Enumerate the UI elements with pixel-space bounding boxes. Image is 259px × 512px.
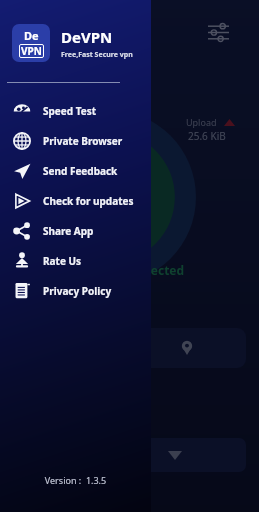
staticText: Upload xyxy=(186,116,217,128)
staticText: DeVPN xyxy=(61,27,113,47)
staticText: Send Feedback xyxy=(43,164,118,178)
button[interactable]: DeVPN logo xyxy=(12,24,50,62)
button[interactable]: Share App xyxy=(0,216,151,246)
staticText: 25.6 KiB xyxy=(188,129,226,143)
button[interactable]: Settings xyxy=(203,17,233,47)
button[interactable]: Server location xyxy=(130,328,246,368)
staticText: Check for updates xyxy=(43,194,134,208)
staticText: Speed Test xyxy=(43,104,97,118)
button[interactable]: Expand list xyxy=(130,438,246,472)
staticText: Privacy Policy xyxy=(43,284,112,298)
staticText: Share App xyxy=(43,224,94,238)
button[interactable]: Rate Us xyxy=(0,246,151,276)
button[interactable]: Send Feedback xyxy=(0,156,151,186)
staticText: Connected xyxy=(120,262,185,278)
staticText: Version : 1.3.5 xyxy=(0,474,151,486)
staticText: VPN xyxy=(21,44,42,58)
button[interactable]: Private Browser xyxy=(0,126,151,156)
button[interactable]: Check for updates xyxy=(0,186,151,216)
staticText: Free,Fast Secure vpn xyxy=(61,50,133,60)
button[interactable]: Speed Test xyxy=(0,96,151,126)
staticText: Private Browser xyxy=(43,134,123,148)
staticText: Rate Us xyxy=(43,254,82,268)
staticText: De xyxy=(24,28,39,43)
button[interactable]: Privacy Policy xyxy=(0,276,151,306)
